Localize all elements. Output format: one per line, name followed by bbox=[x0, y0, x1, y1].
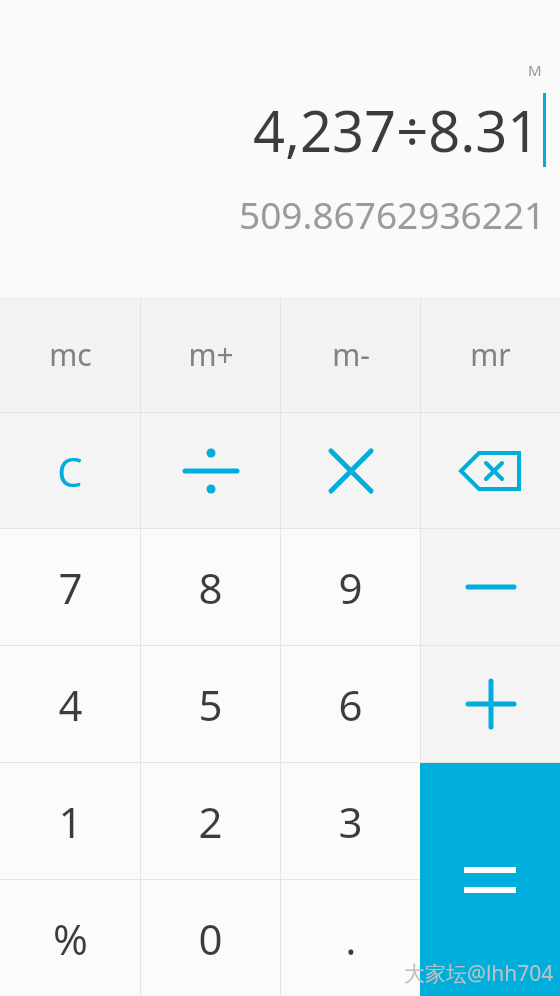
staticText: m+ bbox=[188, 334, 234, 375]
staticText: mc bbox=[49, 334, 92, 375]
staticText: 509.86762936221 bbox=[239, 189, 546, 239]
staticText: mr bbox=[470, 334, 511, 375]
staticText: 2 bbox=[198, 793, 223, 850]
staticText: m- bbox=[332, 334, 370, 375]
staticText: 大家坛@lhh704 bbox=[404, 959, 554, 988]
button[interactable]: Divide bbox=[141, 413, 280, 528]
staticText: C bbox=[57, 444, 83, 498]
staticText: 3 bbox=[338, 793, 363, 850]
button[interactable]: 2 bbox=[141, 763, 280, 879]
button[interactable]: 7 bbox=[0, 529, 140, 645]
button[interactable]: 0 bbox=[141, 880, 280, 996]
button[interactable]: m+ bbox=[141, 297, 280, 412]
button[interactable]: Multiply bbox=[281, 413, 420, 528]
staticText: % bbox=[53, 910, 88, 967]
staticText: 8 bbox=[198, 559, 223, 616]
staticText: 4 bbox=[58, 676, 83, 733]
staticText: 9 bbox=[338, 559, 363, 616]
button[interactable]: m- bbox=[281, 297, 420, 412]
staticText: . bbox=[345, 910, 357, 967]
button[interactable]: % bbox=[0, 880, 140, 996]
button[interactable]: 5 bbox=[141, 646, 280, 762]
staticText: 1 bbox=[58, 793, 83, 850]
button[interactable]: mr bbox=[421, 297, 560, 412]
button[interactable]: 3 bbox=[281, 763, 420, 879]
staticText: 4,237÷8.31 bbox=[253, 92, 540, 168]
button[interactable]: 8 bbox=[141, 529, 280, 645]
button[interactable] bbox=[420, 763, 560, 996]
button[interactable]: . bbox=[281, 880, 420, 996]
button[interactable]: 4 bbox=[0, 646, 140, 762]
staticText: 6 bbox=[338, 676, 363, 733]
button[interactable]: C bbox=[0, 413, 140, 528]
button[interactable]: 9 bbox=[281, 529, 420, 645]
button[interactable]: Backspace bbox=[421, 413, 560, 528]
staticText: 0 bbox=[198, 910, 223, 967]
button[interactable]: 6 bbox=[281, 646, 420, 762]
staticText: 7 bbox=[58, 559, 83, 616]
button[interactable]: Plus bbox=[421, 646, 560, 762]
button[interactable]: mc bbox=[0, 297, 140, 412]
button[interactable]: 1 bbox=[0, 763, 140, 879]
staticText: M bbox=[528, 60, 542, 80]
staticText: 5 bbox=[198, 676, 223, 733]
button[interactable]: Minus bbox=[421, 529, 560, 645]
